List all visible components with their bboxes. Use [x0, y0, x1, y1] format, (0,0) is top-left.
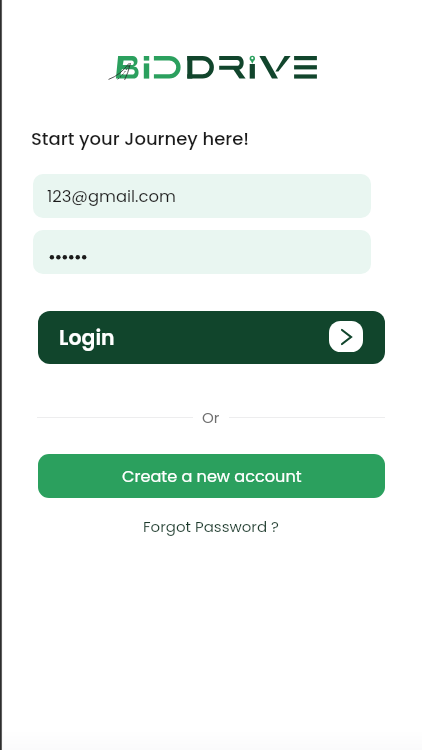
staticText: 123@gmail.com: [47, 185, 176, 208]
staticText: Start your Journey here!: [31, 126, 250, 151]
button[interactable]: 123@gmail.com: [33, 174, 371, 218]
button[interactable]: Login: [38, 311, 385, 364]
button[interactable]: Forgot Password ?: [143, 516, 279, 537]
button[interactable]: [33, 230, 371, 274]
staticText: Or: [202, 407, 220, 428]
other: Log in: [329, 321, 363, 352]
staticText: Create a new account: [122, 465, 302, 488]
staticText: Login: [59, 323, 115, 352]
button[interactable]: Create a new account: [38, 454, 385, 498]
